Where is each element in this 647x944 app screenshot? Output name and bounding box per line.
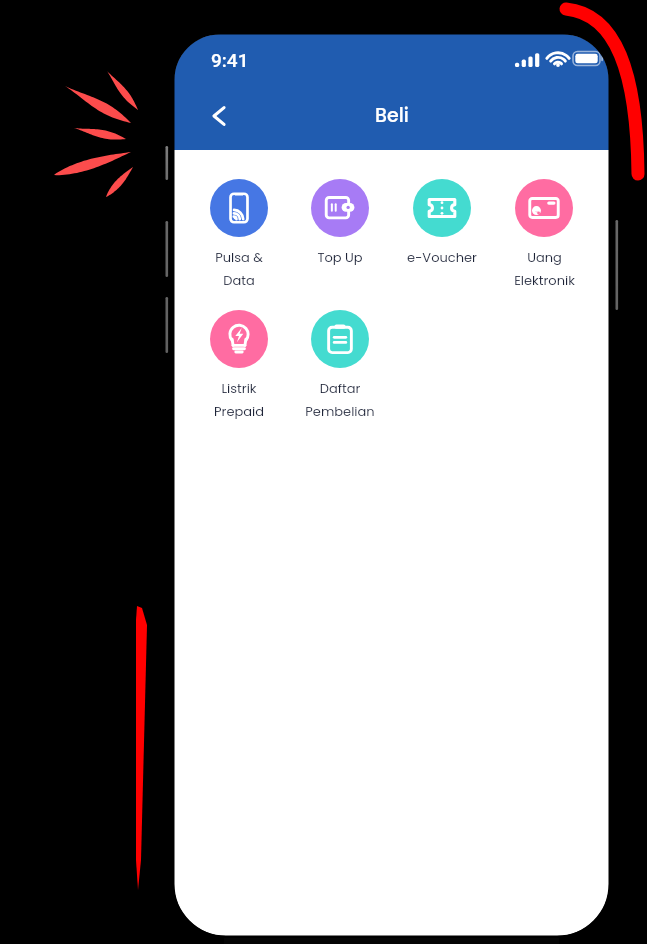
button[interactable]: e-Voucher <box>391 162 493 293</box>
button[interactable]: Top Up <box>289 162 391 293</box>
staticText: Beli <box>375 102 409 129</box>
staticText: Listrik Prepaid <box>214 379 264 421</box>
staticText: Uang Elektronik <box>514 248 575 290</box>
staticText: e-Voucher <box>407 248 477 266</box>
staticText: 9:41 <box>211 49 249 71</box>
button[interactable]: Pulsa & Data <box>188 162 289 293</box>
button[interactable]: Listrik Prepaid <box>188 293 289 424</box>
button[interactable]: Back <box>197 94 241 138</box>
button[interactable]: Daftar Pembelian <box>289 293 391 424</box>
button[interactable]: Uang Elektronik <box>493 162 595 293</box>
staticText: Daftar Pembelian <box>305 379 375 421</box>
staticText: Top Up <box>317 248 363 266</box>
staticText: Pulsa & Data <box>215 248 263 290</box>
